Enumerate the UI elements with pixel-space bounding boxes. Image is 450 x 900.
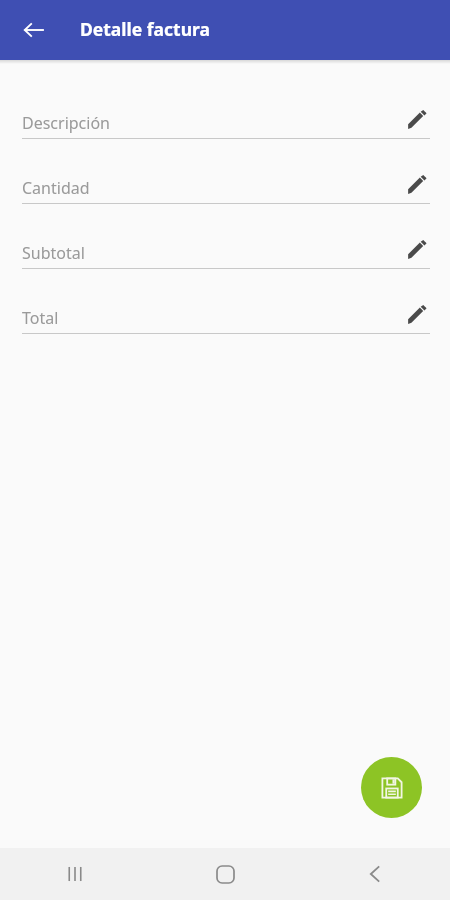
button[interactable]: Total [0,289,450,354]
button[interactable]: Guardar [361,757,422,818]
other: Editar Total [400,299,432,331]
button[interactable]: Recientes [0,848,150,900]
other: Editar Descripción [400,104,432,136]
button[interactable]: Subtotal [0,224,450,289]
staticText: Detalle factura [80,17,210,41]
button[interactable]: Atrás [12,8,56,52]
button[interactable]: Atrás [300,848,450,900]
button[interactable]: Cantidad [0,159,450,224]
button[interactable]: Descripción [0,94,450,159]
other: Editar Cantidad [400,169,432,201]
other: Editar Subtotal [400,234,432,266]
button[interactable]: Inicio [150,848,300,900]
staticText: Descripción [22,112,111,134]
staticText: Subtotal [22,242,85,264]
staticText: Cantidad [22,177,90,199]
staticText: Total [22,307,59,329]
